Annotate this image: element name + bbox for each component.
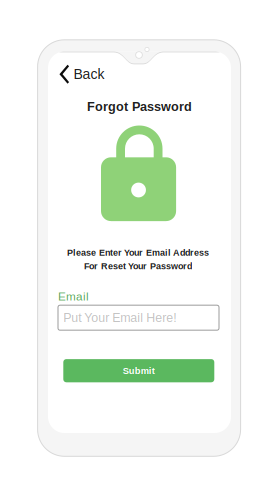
button[interactable]: Put Your Email Here!	[58, 305, 219, 330]
button[interactable]: Back	[55, 60, 108, 88]
button[interactable]: Submit	[63, 359, 214, 382]
staticText: Email	[58, 290, 89, 303]
staticText: Forgot Password	[87, 100, 192, 114]
staticText: Submit	[123, 365, 155, 376]
staticText: Please Enter Your Email Address	[67, 248, 209, 258]
staticText: Put Your Email Here!	[63, 311, 176, 325]
staticText: Back	[73, 66, 104, 82]
staticText: For Reset Your Password	[84, 261, 192, 271]
